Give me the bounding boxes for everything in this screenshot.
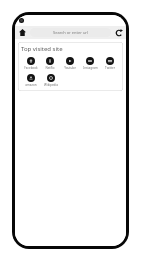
staticText: Youtube (64, 66, 76, 70)
button[interactable]: Instagram (80, 56, 100, 71)
staticText: Netflix (45, 66, 55, 70)
staticText: Top visited site (21, 45, 63, 53)
button[interactable]: Twitter (100, 56, 120, 71)
staticText: amazon (25, 83, 37, 87)
button[interactable]: Wikipedia (41, 73, 61, 88)
button[interactable]: Reload (113, 27, 124, 38)
button[interactable]: Youtube (60, 56, 80, 71)
staticText: Facebook (24, 66, 38, 70)
staticText: Twitter (105, 66, 115, 70)
button[interactable]: amazon (21, 73, 41, 88)
button[interactable]: Netflix (40, 56, 60, 71)
button[interactable]: Facebook (21, 56, 40, 71)
staticText: Search or enter url (30, 30, 111, 35)
staticText: Wikipedia (44, 83, 58, 87)
staticText: Instagram (83, 66, 98, 70)
button[interactable]: Search or enter url (30, 28, 111, 37)
button[interactable]: Home (17, 27, 28, 38)
